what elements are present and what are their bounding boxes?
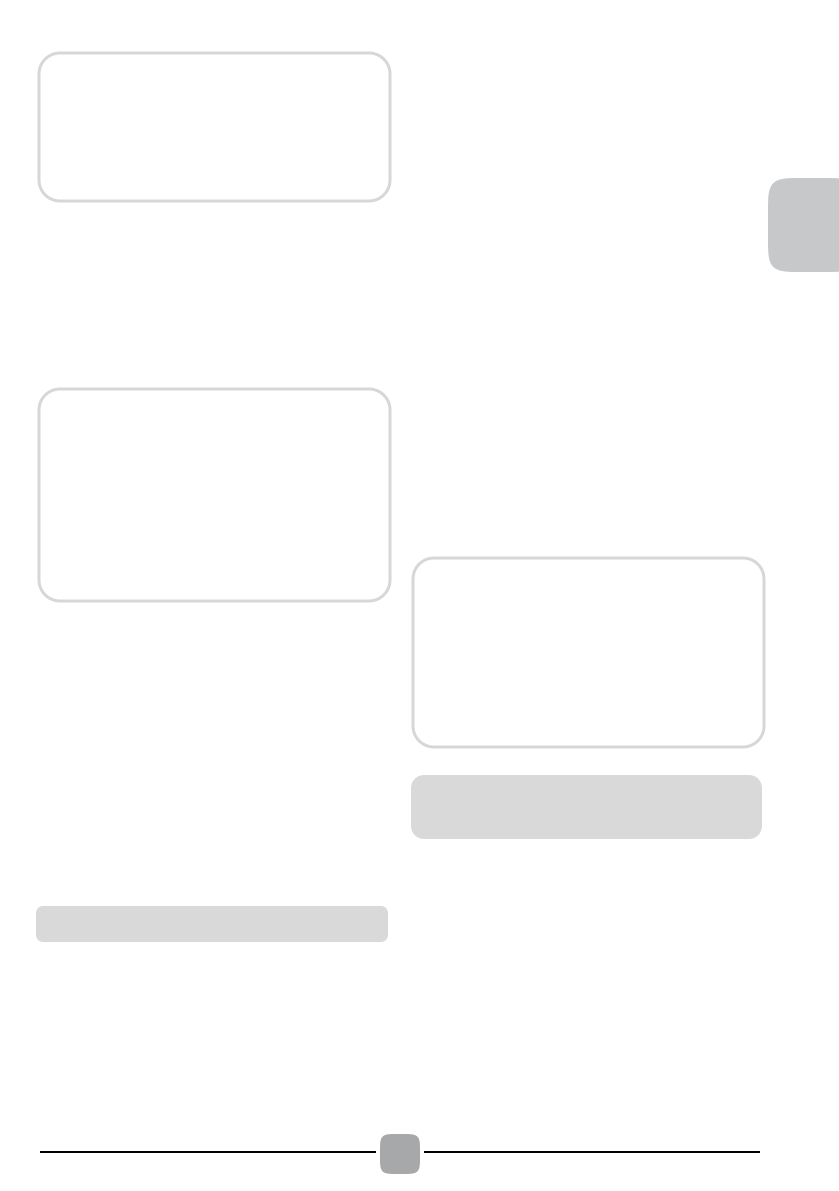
button[interactable]: Side panel xyxy=(768,178,839,272)
button[interactable]: Card xyxy=(39,53,390,201)
button[interactable]: Handle xyxy=(380,1134,420,1174)
button[interactable]: Card xyxy=(413,558,764,747)
button[interactable]: Card xyxy=(39,389,390,601)
